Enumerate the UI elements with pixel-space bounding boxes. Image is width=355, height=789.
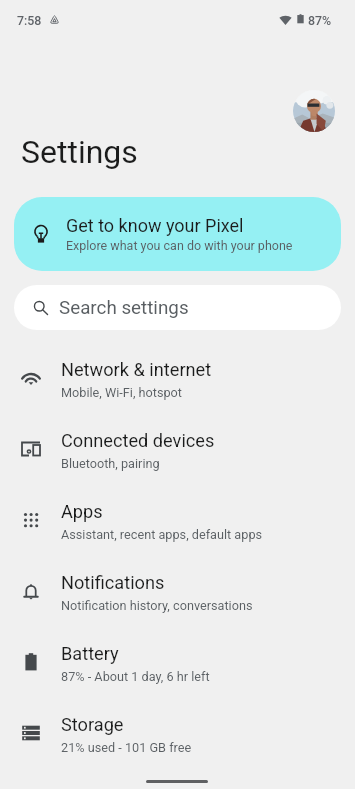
staticText: Connected devices [61,430,215,451]
staticText: Mobile, Wi-Fi, hotspot [61,385,183,400]
staticText: Explore what you can do with your phone [66,238,293,253]
button[interactable]: Notifications [0,556,355,627]
staticText: 87% - About 1 day, 6 hr left [61,669,210,684]
staticText: Settings [21,133,138,171]
staticText: 7:58 [17,13,42,28]
button[interactable]: Connected devices [0,414,355,485]
staticText: Assistant, recent apps, default apps [61,527,263,542]
button[interactable]: Account [293,90,335,132]
staticText: Notification history, conversations [61,598,253,613]
staticText: Apps [61,501,103,522]
button[interactable]: Battery [0,627,355,698]
button[interactable]: Storage [0,698,355,769]
staticText: Network & internet [61,359,212,380]
button[interactable]: Apps [0,485,355,556]
button[interactable]: Network & internet [0,343,355,414]
staticText: 87% [308,13,332,28]
button[interactable]: Get to know your Pixel [14,197,341,271]
staticText: 21% used - 101 GB free [61,740,192,755]
staticText: Search settings [59,297,189,319]
staticText: Bluetooth, pairing [61,456,160,471]
staticText: Storage [61,714,124,735]
button[interactable]: Search settings [14,285,341,330]
staticText: Battery [61,643,119,664]
staticText: Get to know your Pixel [66,215,244,236]
staticText: Notifications [61,572,165,593]
